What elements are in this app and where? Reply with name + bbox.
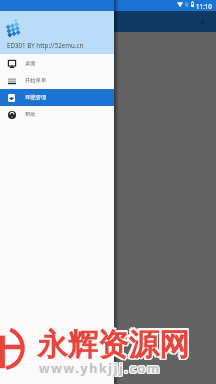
staticText: www.yhkjjj.com — [40, 359, 162, 376]
staticText: 11:10 — [196, 2, 212, 10]
staticText: 永辉资源网 — [35, 326, 188, 364]
staticText: www.yhkjjj.com — [40, 361, 162, 378]
staticText: 永辉资源网 — [37, 327, 190, 365]
button[interactable]: 环境管理 — [0, 89, 114, 106]
staticText: www.yhkjjj.com — [40, 360, 162, 377]
staticText: www.yhkjjj.com — [38, 360, 160, 377]
staticText: 开始菜单 — [25, 77, 47, 84]
staticText: 永辉资源网 — [38, 324, 191, 362]
button[interactable]: 帮助 — [0, 106, 114, 123]
staticText: 桌面 — [25, 60, 36, 67]
staticText: 永辉资源网 — [38, 326, 191, 364]
button[interactable]: 开始菜单 — [0, 72, 114, 89]
staticText: 帮助 — [25, 111, 36, 118]
staticText: www.yhkjjj.com — [39, 361, 161, 378]
staticText: www.yhkjjj.com — [39, 359, 161, 376]
staticText: 永辉资源网 — [35, 324, 188, 362]
staticText: www.yhkjjj.com — [38, 359, 160, 376]
staticText: ED301 BY http://52emu.cn — [7, 41, 84, 49]
button[interactable]: Add — [196, 16, 208, 28]
staticText: 永辉资源网 — [37, 324, 190, 362]
button[interactable]: 桌面 — [0, 55, 114, 72]
staticText: 环境管理 — [25, 94, 47, 101]
staticText: www.yhkjjj.com — [38, 361, 160, 378]
staticText: 永辉资源网 — [35, 327, 188, 365]
staticText: www.yhkjjj.com — [39, 360, 161, 377]
staticText: 永辉资源网 — [37, 326, 190, 364]
staticText: 永辉资源网 — [38, 327, 191, 365]
